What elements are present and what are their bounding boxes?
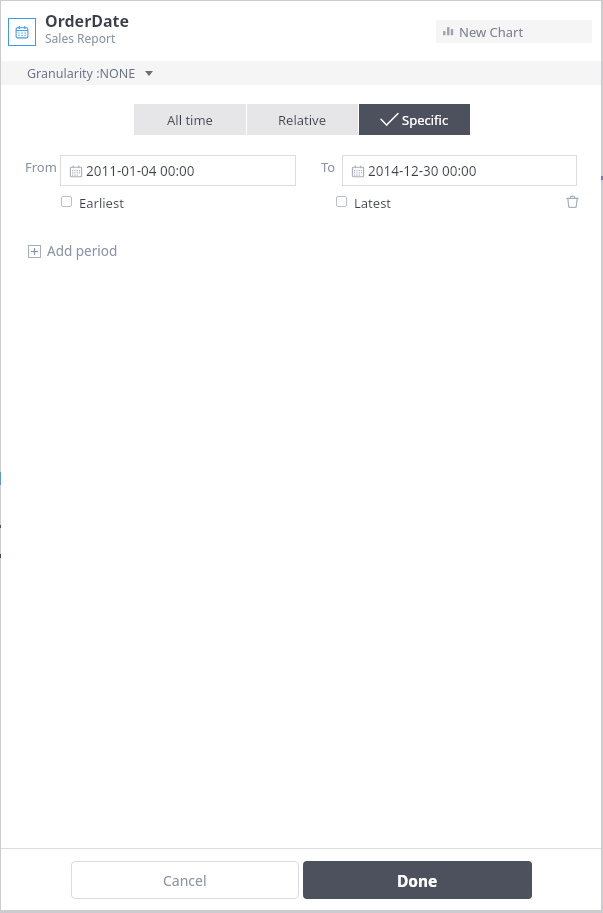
button[interactable]: Add period <box>28 242 118 260</box>
button[interactable]: 2011-01-04 00:00 <box>60 155 296 186</box>
staticText: 2014-12-30 00:00 <box>368 162 477 180</box>
button[interactable]: All time <box>134 104 246 135</box>
button[interactable]: New Chart <box>436 20 592 43</box>
button[interactable]: Latest <box>336 194 392 208</box>
button[interactable]: Specific <box>359 104 470 135</box>
button[interactable]: 2014-12-30 00:00 <box>342 155 577 186</box>
staticText: Specific <box>402 111 449 129</box>
staticText: Sales Report <box>45 30 116 46</box>
button[interactable]: Delete period <box>562 194 582 208</box>
staticText: All time <box>167 111 213 129</box>
staticText: To <box>321 158 336 176</box>
staticText: OrderDate <box>45 10 130 32</box>
staticText: Cancel <box>163 871 207 890</box>
button[interactable]: Earliest <box>61 194 124 208</box>
staticText: Add period <box>47 242 118 260</box>
staticText: Latest <box>354 194 392 208</box>
staticText: Granularity :NONE <box>27 65 136 82</box>
button[interactable]: Cancel <box>71 861 299 899</box>
staticText: 2011-01-04 00:00 <box>86 162 195 180</box>
staticText: Earliest <box>79 194 124 208</box>
staticText: From <box>25 158 57 176</box>
button[interactable]: Granularity :NONE <box>1 61 601 85</box>
staticText: Relative <box>278 111 327 129</box>
staticText: Done <box>397 870 438 891</box>
staticText: New Chart <box>459 23 524 41</box>
button[interactable]: Relative <box>247 104 358 135</box>
button[interactable]: Done <box>303 861 532 899</box>
